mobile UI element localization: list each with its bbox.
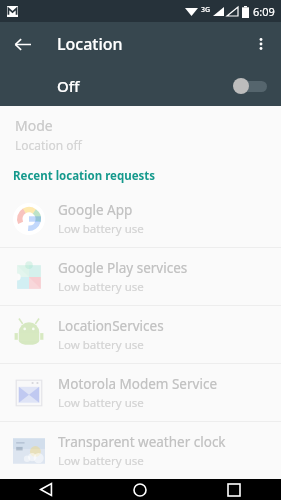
- button[interactable]: Off: [0, 66, 281, 106]
- button[interactable]: Home: [93, 479, 187, 500]
- staticText: Google App: [58, 201, 133, 219]
- staticText: Motorola Modem Service: [58, 375, 217, 393]
- staticText: LocationServices: [58, 317, 164, 335]
- staticText: Transparent weather clock: [58, 433, 226, 451]
- staticText: Location off: [15, 137, 82, 153]
- button[interactable]: Back: [4, 26, 40, 62]
- staticText: Off: [57, 76, 80, 96]
- button[interactable]: Google Play services: [0, 248, 281, 305]
- staticText: Low battery use: [58, 453, 144, 469]
- staticText: Low battery use: [58, 279, 144, 295]
- button[interactable]: Motorola Modem Service: [0, 364, 281, 421]
- button[interactable]: LocationServices: [0, 306, 281, 363]
- staticText: Recent location requests: [13, 168, 156, 184]
- button[interactable]: More options: [243, 26, 279, 62]
- staticText: Location: [57, 33, 123, 55]
- staticText: Google Play services: [58, 259, 188, 277]
- staticText: Low battery use: [58, 395, 144, 411]
- staticText: 6:09: [253, 4, 275, 19]
- button[interactable]: Transparent weather clock: [0, 422, 281, 479]
- button[interactable]: Recent apps: [187, 479, 281, 500]
- staticText: Low battery use: [58, 221, 144, 237]
- staticText: Low battery use: [58, 337, 144, 353]
- button[interactable]: Google App: [0, 190, 281, 247]
- staticText: 3G: [201, 5, 211, 15]
- button[interactable]: Location toggle, off: [233, 76, 267, 96]
- staticText: Mode: [15, 116, 53, 135]
- button[interactable]: Mode: [0, 106, 281, 162]
- button[interactable]: Back: [0, 479, 93, 500]
